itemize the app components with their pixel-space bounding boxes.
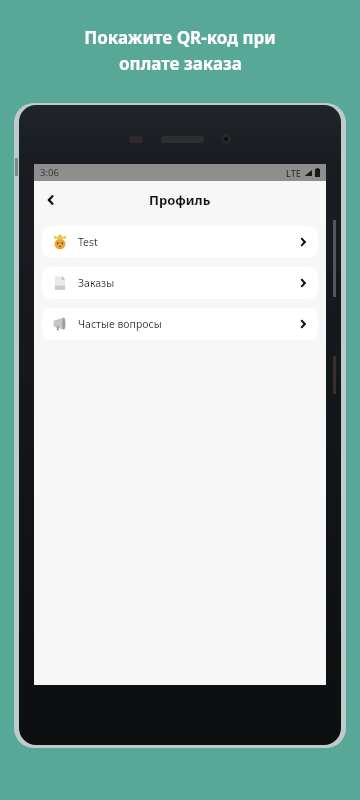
staticText: Покажите QR-код при (84, 26, 276, 49)
staticText: оплате заказа (119, 52, 242, 75)
staticText: Test (78, 235, 98, 249)
button[interactable]: Заказы (42, 267, 318, 299)
staticText: Заказы (78, 276, 115, 290)
staticText: Профиль (149, 191, 211, 209)
staticText: Частые вопросы (78, 317, 162, 331)
button[interactable]: Назад (34, 183, 68, 217)
staticText: 3:06 (40, 166, 59, 179)
button[interactable]: Частые вопросы (42, 308, 318, 340)
button[interactable]: Test (42, 226, 318, 258)
staticText: LTE (286, 167, 301, 179)
